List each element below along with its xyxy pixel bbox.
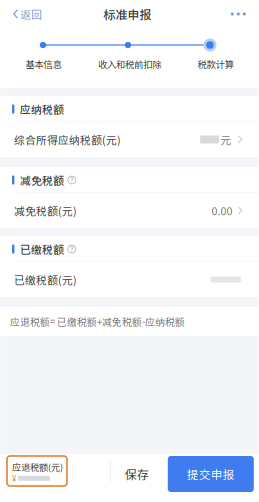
staticText: 税款计算 (197, 57, 233, 71)
button[interactable]: 已缴税额(元) (0, 262, 259, 297)
staticText: ? (70, 244, 74, 253)
staticText: 综合所得应纳税额(元) (14, 132, 121, 147)
staticText: 返回 (20, 6, 42, 22)
staticText: 0.00 (212, 203, 233, 218)
staticText: 应退税额= 已缴税额+减免税额-应纳税额 (10, 314, 185, 329)
staticText: 已缴税额 (20, 241, 64, 257)
staticText: ? (70, 175, 74, 184)
staticText: 减免税额 (20, 172, 64, 188)
staticText: 基本信息 (25, 57, 61, 71)
staticText: 应退税额(元) (12, 460, 63, 473)
button[interactable]: 提交申报 (163, 454, 259, 492)
button[interactable]: 综合所得应纳税额(元) (0, 122, 259, 157)
button[interactable]: 返回 (0, 0, 50, 28)
staticText: 元 (221, 132, 232, 147)
staticText: 减免税额(元) (14, 203, 77, 218)
staticText: 提交申报 (187, 466, 235, 482)
staticText: 保存 (125, 465, 149, 483)
staticText: ¥ (12, 472, 16, 484)
button[interactable]: More options (219, 0, 259, 28)
button[interactable]: 应退税额(元) (0, 454, 67, 486)
staticText: 应纳税额 (20, 101, 64, 117)
staticText: 已缴税额(元) (14, 272, 77, 287)
staticText: 收入和税前扣除 (98, 57, 161, 71)
button[interactable]: 保存 (111, 454, 163, 492)
staticText: 标准申报 (103, 5, 151, 23)
button[interactable]: 减免税额(元) (0, 193, 259, 228)
